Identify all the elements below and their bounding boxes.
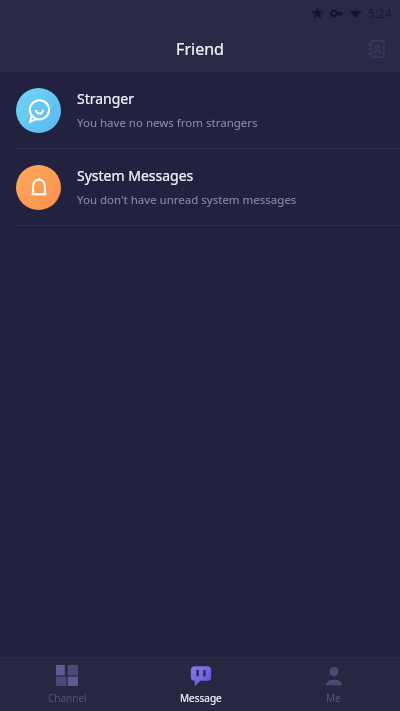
- staticText: Message: [180, 691, 222, 705]
- button[interactable]: Message: [134, 658, 267, 711]
- button[interactable]: System Messages: [0, 149, 400, 225]
- staticText: You don't have unread system messages: [77, 192, 297, 208]
- button[interactable]: Channel: [0, 658, 134, 711]
- staticText: System Messages: [77, 166, 194, 185]
- staticText: 5:24: [368, 5, 392, 21]
- staticText: Me: [326, 691, 341, 705]
- staticText: Stranger: [77, 89, 135, 108]
- staticText: Friend: [176, 38, 224, 60]
- button[interactable]: Stranger: [0, 72, 400, 148]
- staticText: Channel: [48, 691, 87, 705]
- button[interactable]: Me: [267, 658, 400, 711]
- button[interactable]: Contacts: [364, 37, 388, 61]
- staticText: You have no news from strangers: [77, 115, 258, 131]
